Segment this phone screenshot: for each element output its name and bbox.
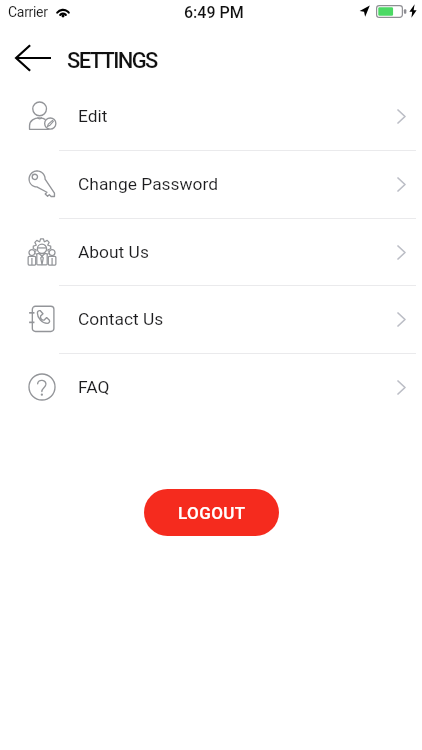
staticText: 6:49 PM bbox=[184, 3, 244, 22]
button[interactable]: Edit bbox=[0, 82, 422, 150]
staticText: SETTINGS bbox=[67, 48, 157, 74]
button[interactable]: Back bbox=[13, 43, 53, 72]
button[interactable]: Change Password bbox=[0, 150, 422, 218]
button[interactable]: Contact Us bbox=[0, 285, 422, 353]
staticText: LOGOUT bbox=[178, 503, 246, 523]
staticText: About Us bbox=[78, 242, 149, 262]
button[interactable]: FAQ bbox=[0, 353, 422, 421]
staticText: Contact Us bbox=[78, 309, 164, 329]
button[interactable]: About Us bbox=[0, 218, 422, 286]
staticText: Edit bbox=[78, 106, 108, 126]
staticText: Change Password bbox=[78, 174, 219, 194]
staticText: Carrier bbox=[8, 4, 48, 20]
staticText: FAQ bbox=[78, 377, 110, 397]
button[interactable]: LOGOUT bbox=[144, 489, 279, 536]
